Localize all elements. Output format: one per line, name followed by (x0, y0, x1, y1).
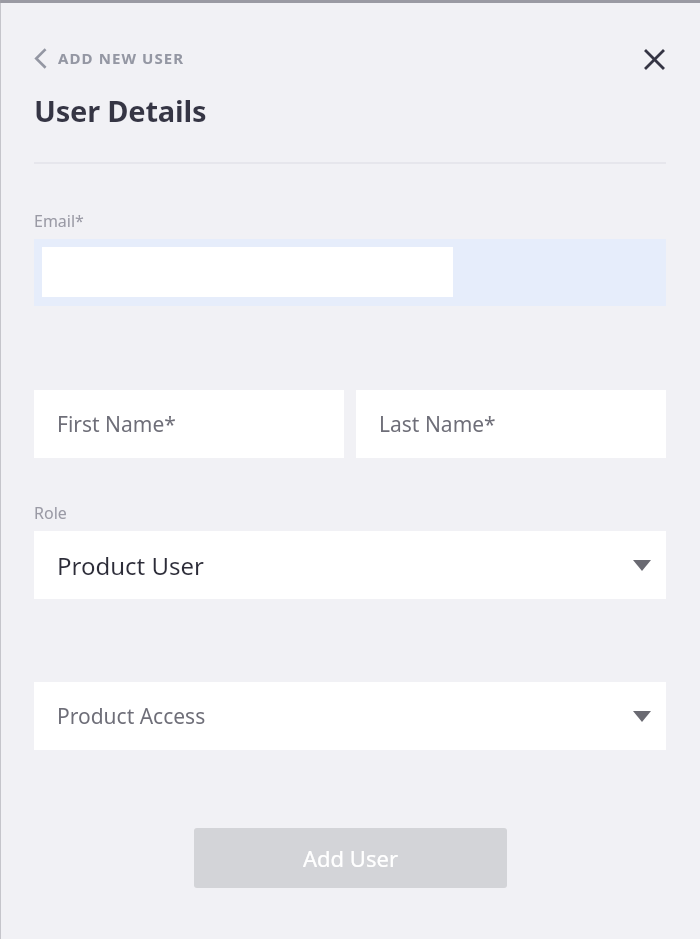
button[interactable]: Last Name* (356, 390, 666, 458)
staticText: Last Name* (379, 410, 496, 439)
button[interactable]: ADD NEW USER (30, 45, 193, 71)
staticText: ADD NEW USER (58, 48, 185, 68)
staticText: Add User (303, 843, 398, 873)
staticText: Product Access (57, 702, 206, 731)
button[interactable]: Add User (194, 828, 507, 888)
button[interactable] (34, 239, 666, 306)
button[interactable]: Product User (34, 531, 666, 599)
staticText: Email* (34, 210, 84, 232)
staticText: Role (34, 502, 67, 524)
button[interactable]: First Name* (34, 390, 344, 458)
staticText: User Details (34, 91, 207, 130)
button[interactable]: Product Access (34, 682, 666, 750)
button[interactable]: Close (637, 42, 671, 76)
staticText: Product User (57, 549, 204, 582)
staticText: First Name* (57, 410, 176, 439)
